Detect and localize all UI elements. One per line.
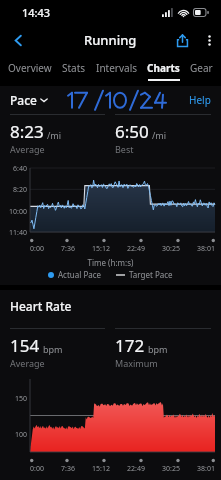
staticText: Stats [62,61,86,75]
staticText: bpm [148,343,168,355]
staticText: /mi [152,129,167,141]
staticText: Running [84,31,137,49]
staticText: Maximum [115,357,158,369]
staticText: Intervals [96,61,138,75]
staticText: Gear [190,61,213,75]
staticText: 6:40 [0,164,27,174]
button[interactable]: Help [189,93,211,107]
staticText: 30:25 [162,464,180,474]
staticText: 22:49 [127,244,145,254]
button[interactable]: Back [3,25,33,55]
staticText: 150 [0,394,27,404]
staticText: 15:12 [92,464,110,474]
button[interactable]: Overview [5,61,55,81]
button[interactable]: Charts [144,61,183,81]
staticText: Charts [147,61,180,75]
staticText: Help [189,93,211,107]
staticText: 172 [115,334,145,357]
staticText: 8:23 [10,120,44,143]
staticText: 11:40 [0,228,27,238]
staticText: 15:12 [92,244,110,254]
staticText: 154 [10,334,40,357]
staticText: 22:49 [127,464,145,474]
staticText: Target Pace [129,269,173,280]
staticText: 100 [0,430,27,440]
button[interactable]: Pace [10,92,48,108]
button[interactable]: Gear [187,61,216,81]
staticText: Average [10,143,45,155]
staticText: 0:00 [30,464,44,474]
staticText: 7:36 [61,244,75,254]
staticText: 8:20 [0,185,27,195]
staticText: Average [10,357,45,369]
staticText: 7:36 [61,464,75,474]
staticText: 0:00 [30,244,44,254]
staticText: 38:01 [197,244,215,254]
staticText: Heart Rate [10,298,72,314]
staticText: Best [115,143,134,155]
staticText: 14:43 [22,5,51,20]
staticText: bpm [43,343,63,355]
button[interactable]: More options [197,28,221,52]
staticText: 6:50 [115,120,149,143]
staticText: Time (h:m:s) [0,257,221,268]
staticText: /mi [47,129,62,141]
button[interactable]: Intervals [93,61,141,81]
staticText: Overview [8,61,52,75]
staticText: Actual Pace [58,269,102,280]
staticText: Pace [10,92,37,108]
staticText: 30:25 [162,244,180,254]
staticText: 10:00 [0,207,27,217]
staticText: 38:01 [197,464,215,474]
button[interactable]: Share [167,25,197,55]
button[interactable]: Stats [59,61,89,81]
